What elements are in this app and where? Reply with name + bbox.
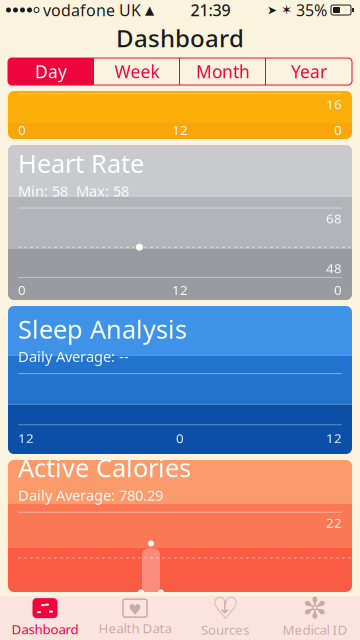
staticText: Medical ID	[282, 621, 347, 638]
staticText: Daily Average: 780.29	[18, 485, 163, 505]
staticText: Min: 58 Max: 58	[18, 181, 129, 200]
button[interactable]: Active Calories	[8, 460, 352, 592]
button[interactable]: Month	[180, 58, 266, 85]
staticText: Heart Rate	[18, 146, 144, 180]
staticText: 0	[334, 281, 342, 299]
staticText: 12	[172, 281, 188, 299]
staticText: 0	[176, 429, 184, 447]
staticText: Daily Average: --	[18, 347, 129, 366]
button[interactable]: ♡	[180, 596, 270, 640]
staticText: Active Calories	[18, 451, 191, 484]
staticText: 48	[326, 259, 342, 277]
staticText: 35%	[296, 0, 327, 21]
staticText: ➤	[267, 3, 277, 17]
button[interactable]: Year	[266, 58, 352, 85]
staticText: Sleep Analysis	[18, 312, 187, 346]
button[interactable]: ♥	[90, 596, 180, 640]
staticText: ▲	[145, 3, 154, 17]
button[interactable]: Dashboard	[0, 596, 90, 640]
staticText: ♥	[128, 601, 141, 618]
staticText: Dashboard	[11, 620, 78, 638]
staticText: 0	[18, 281, 26, 299]
staticText: 22	[326, 514, 342, 531]
staticText: 0	[334, 121, 342, 139]
staticText: 12	[18, 429, 34, 447]
staticText: Week	[114, 60, 159, 83]
staticText: 21:39	[190, 0, 230, 21]
staticText: Day	[35, 60, 67, 83]
staticText: 0	[18, 121, 26, 139]
staticText: ↓	[217, 597, 232, 617]
staticText: vodafone UK	[43, 0, 141, 21]
staticText: 12	[326, 429, 342, 447]
staticText: ♡	[211, 591, 238, 625]
staticText: 12	[172, 121, 188, 139]
button[interactable]: Heart Rate	[8, 145, 352, 300]
button[interactable]: 16	[8, 91, 352, 139]
staticText: Sources	[201, 621, 249, 638]
button[interactable]: Sleep Analysis	[8, 306, 352, 454]
staticText: ✶	[281, 2, 292, 17]
button[interactable]: Day	[8, 58, 94, 85]
staticText: 16	[326, 95, 342, 113]
staticText: Year	[291, 60, 327, 83]
button[interactable]: ✼	[270, 596, 360, 640]
staticText: 68	[326, 209, 342, 227]
button[interactable]: Week	[94, 58, 180, 85]
staticText: Dashboard	[116, 22, 244, 54]
staticText: ✼	[302, 591, 327, 625]
staticText: Month	[196, 60, 250, 83]
staticText: Health Data	[98, 619, 171, 637]
